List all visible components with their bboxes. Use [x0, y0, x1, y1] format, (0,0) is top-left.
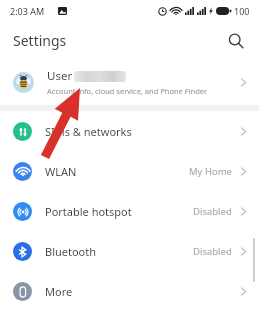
staticText: Account info, cloud service, and Phone F…	[47, 86, 208, 96]
staticText: User	[47, 68, 73, 84]
staticText: Disabled	[193, 245, 232, 258]
button[interactable]: SIMs & networks	[0, 111, 259, 151]
button[interactable]: More	[0, 271, 259, 311]
staticText: More	[45, 284, 73, 299]
button[interactable]: Portable hotspot	[0, 191, 259, 231]
button[interactable]: Search	[221, 26, 251, 56]
button[interactable]: Bluetooth	[0, 231, 259, 271]
staticText: Settings	[13, 31, 67, 50]
button[interactable]: User	[0, 59, 259, 105]
staticText: My Home	[189, 165, 232, 178]
staticText: 100	[234, 5, 250, 17]
staticText: SIMs & networks	[45, 124, 132, 139]
button[interactable]: WLAN	[0, 151, 259, 191]
staticText: Bluetooth	[45, 244, 97, 259]
staticText: Portable hotspot	[45, 204, 132, 219]
staticText: 2:03 AM	[10, 5, 45, 17]
staticText: WLAN	[45, 164, 77, 179]
staticText: Disabled	[193, 205, 232, 218]
